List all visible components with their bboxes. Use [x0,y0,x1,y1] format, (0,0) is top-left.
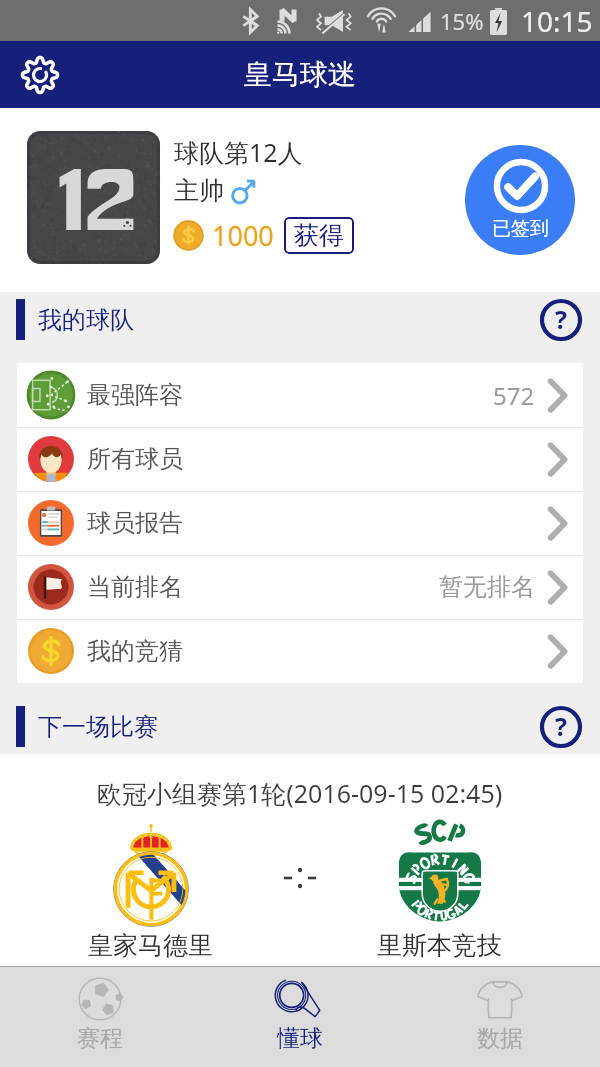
button[interactable]: 懂球 [200,967,400,1067]
button[interactable]: Help [539,298,583,342]
button[interactable]: 球员报告 [17,491,583,555]
staticText: 球员报告 [87,508,183,538]
staticText: 已签到 [492,217,549,241]
staticText: 我的球队 [38,305,134,335]
button[interactable]: 数据 [400,967,600,1067]
button[interactable]: 我的竞猜 [17,619,583,683]
staticText: 皇马球迷 [244,57,356,92]
button[interactable]: Help [539,705,583,749]
staticText: 10:15 [521,2,593,40]
staticText: 懂球 [277,1024,323,1053]
staticText: 主帅 [174,175,224,206]
button[interactable]: 所有球员 [17,427,583,491]
button[interactable] [27,131,160,264]
staticText: 15% [440,6,484,36]
staticText: ? [555,302,567,336]
staticText: 球队第12人 [174,135,303,169]
staticText: 当前排名 [87,572,183,602]
staticText: 最强阵容 [87,380,183,410]
button[interactable]: 最强阵容 [17,363,583,427]
button[interactable]: 获得 [284,217,354,254]
button[interactable]: 当前排名 [17,555,583,619]
staticText: ? [555,709,567,743]
staticText: 皇家马德里 [88,930,213,961]
staticText: 欧冠小组赛第1轮(2016-09-15 02:45) [97,776,503,810]
staticText: 获得 [294,220,344,251]
button[interactable]: 已签到 [465,145,575,255]
staticText: 1000 [212,217,274,254]
staticText: 暂无排名 [439,572,535,602]
staticText: 里斯本竞技 [377,930,502,961]
staticText: 我的竞猜 [87,636,183,666]
staticText: 下一场比赛 [38,712,158,742]
staticText: 所有球员 [87,444,183,474]
staticText: 572 [493,379,535,412]
button[interactable]: Settings [12,47,68,103]
button[interactable]: 赛程 [0,967,200,1067]
staticText: 数据 [477,1024,523,1053]
staticText: 赛程 [77,1024,123,1053]
